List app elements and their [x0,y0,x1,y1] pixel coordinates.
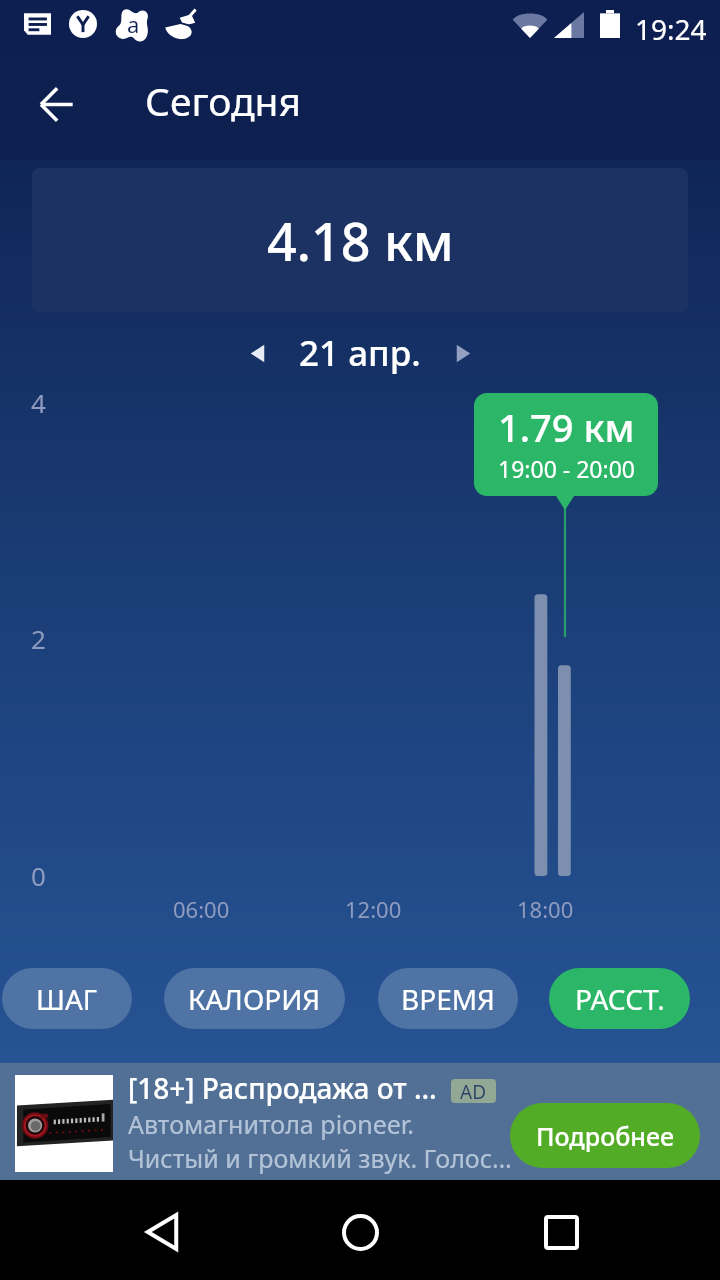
staticText: 21 апр. [299,329,421,377]
staticText: 19:24 [635,10,707,48]
staticText: РАССТ. [575,980,665,1018]
staticText: ВРЕМЯ [401,980,495,1018]
staticText: 06:00 [173,894,230,924]
button[interactable]: Advertisement [0,1063,720,1180]
button[interactable]: ШАГ [2,968,132,1029]
button[interactable]: Back [124,1194,200,1270]
button[interactable]: Previous day [230,326,284,380]
staticText: AD [460,1079,487,1103]
staticText: Автомагнитола pioneer. [128,1107,414,1141]
button[interactable]: Recent apps [522,1194,598,1270]
staticText: Сегодня [145,74,302,127]
staticText: 19:00 - 20:00 [498,453,635,484]
button[interactable]: 1.79 км [474,393,658,496]
staticText: 1.79 км [498,401,635,453]
staticText: 0 [31,858,46,893]
staticText: Подробнее [536,1119,675,1153]
staticText: 12:00 [345,894,402,924]
staticText: 4.18 км [267,205,454,276]
staticText: 18:00 [517,894,574,924]
button[interactable]: ВРЕМЯ [378,968,518,1029]
button[interactable]: Home [322,1194,398,1270]
button[interactable]: Next day [436,326,490,380]
staticText: [18+] Распродажа от … [128,1069,437,1107]
button[interactable]: 4.18 км [32,168,688,312]
staticText: ШАГ [36,980,98,1018]
staticText: 4 [31,385,46,420]
staticText: a [127,9,140,39]
button[interactable]: Подробнее [510,1103,700,1168]
staticText: Чистый и громкий звук. Голос… [128,1141,512,1175]
button[interactable]: Back [26,78,86,138]
staticText: КАЛОРИЯ [188,980,321,1018]
staticText: 2 [31,621,46,656]
button[interactable]: КАЛОРИЯ [164,968,345,1029]
button[interactable]: РАССТ. [549,968,690,1029]
